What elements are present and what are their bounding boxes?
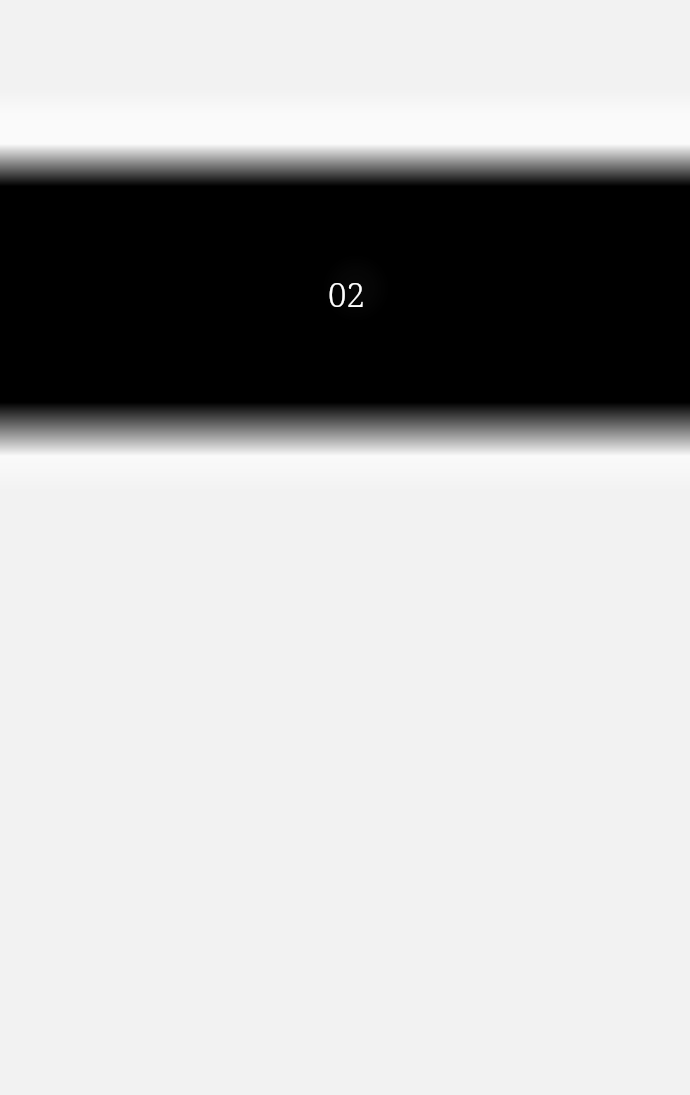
staticText: 02	[328, 272, 365, 317]
button[interactable]: Selected value 02	[322, 252, 390, 324]
